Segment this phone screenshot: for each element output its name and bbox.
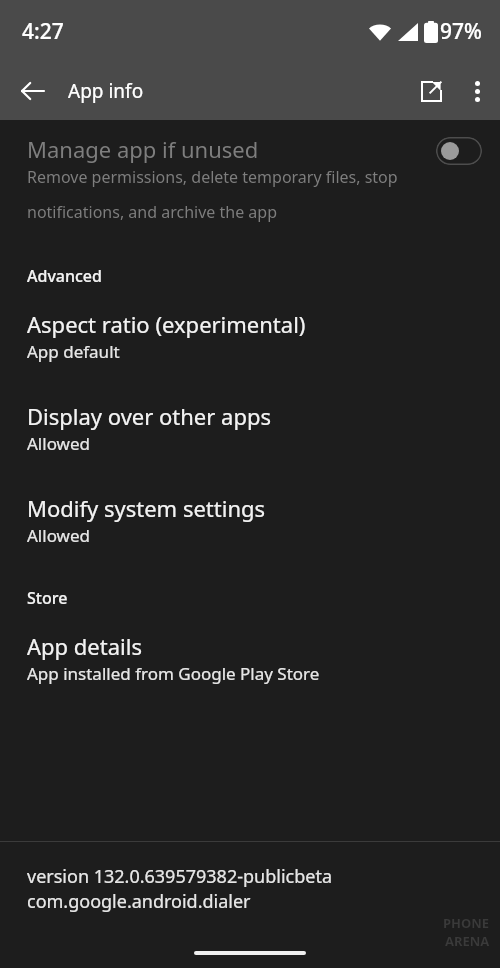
button[interactable]: Aspect ratio (experimental): [0, 287, 500, 365]
button[interactable]: Manage app if unused toggle: [436, 137, 482, 165]
staticText: com.google.android.dialer: [27, 889, 251, 914]
staticText: 97%: [440, 17, 482, 46]
staticText: Remove permissions, delete temporary fil…: [27, 166, 427, 223]
button[interactable]: Back: [10, 69, 54, 113]
button[interactable]: Manage app if unused: [0, 120, 500, 231]
staticText: App info: [68, 78, 144, 104]
staticText: Allowed: [27, 524, 90, 547]
staticText: Advanced: [27, 265, 102, 287]
staticText: Aspect ratio (experimental): [27, 309, 306, 339]
button[interactable]: Open in Play Store: [408, 68, 454, 114]
staticText: Modify system settings: [27, 493, 266, 523]
staticText: ARENA: [445, 932, 490, 950]
button[interactable]: Modify system settings: [0, 457, 500, 549]
staticText: Manage app if unused: [27, 134, 259, 164]
staticText: PHONE: [443, 914, 490, 932]
button[interactable]: App details: [0, 609, 500, 687]
staticText: App installed from Google Play Store: [27, 662, 320, 685]
staticText: Store: [27, 587, 68, 609]
button[interactable]: More options: [454, 68, 500, 114]
staticText: App details: [27, 631, 142, 661]
staticText: Display over other apps: [27, 401, 272, 431]
staticText: Allowed: [27, 432, 90, 455]
staticText: version 132.0.639579382-publicbeta: [27, 864, 332, 889]
staticText: 4:27: [22, 17, 64, 46]
staticText: App default: [27, 340, 120, 363]
button[interactable]: Display over other apps: [0, 365, 500, 457]
